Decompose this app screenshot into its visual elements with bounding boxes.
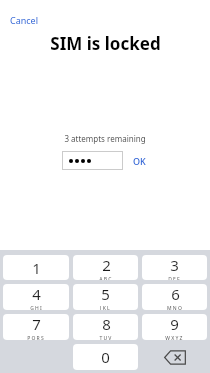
- staticText: 0: [101, 347, 110, 367]
- staticText: 3: [170, 255, 179, 275]
- button[interactable]: 1: [3, 255, 69, 280]
- staticText: 4: [32, 284, 41, 304]
- button[interactable]: 8: [73, 314, 138, 340]
- button[interactable]: 4: [3, 284, 69, 310]
- staticText: 7: [32, 314, 41, 334]
- button[interactable]: [62, 151, 123, 170]
- staticText: GHI: [30, 305, 43, 310]
- staticText: JKL: [100, 305, 111, 310]
- staticText: Cancel: [10, 14, 39, 26]
- staticText: 9: [170, 314, 179, 334]
- staticText: SIM is locked: [50, 32, 161, 55]
- staticText: 5: [101, 284, 110, 304]
- button[interactable]: Cancel: [6, 12, 43, 28]
- button[interactable]: 3: [142, 255, 207, 280]
- staticText: WXYZ: [165, 335, 184, 340]
- staticText: TUV: [99, 335, 113, 340]
- button[interactable]: 6: [142, 284, 207, 310]
- staticText: OK: [133, 155, 146, 167]
- staticText: MNO: [167, 305, 183, 310]
- staticText: 8: [102, 314, 111, 334]
- staticText: 2: [102, 255, 111, 275]
- button[interactable]: OK: [130, 153, 149, 169]
- button[interactable]: 7: [3, 314, 69, 340]
- staticText: DEF: [168, 276, 181, 280]
- button[interactable]: 0: [73, 344, 138, 370]
- button[interactable]: Backspace: [142, 344, 207, 370]
- staticText: 1: [32, 258, 41, 278]
- button[interactable]: 9: [142, 314, 207, 340]
- button[interactable]: 5: [73, 284, 138, 310]
- staticText: PQRS: [27, 335, 45, 340]
- button[interactable]: 2: [73, 255, 138, 280]
- staticText: ABC: [99, 276, 113, 280]
- staticText: 6: [171, 284, 180, 304]
- staticText: 3 attempts remaining: [64, 133, 146, 144]
